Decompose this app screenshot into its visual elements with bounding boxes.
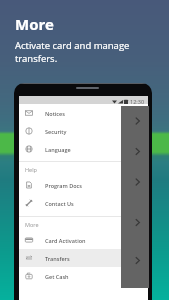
staticText: Contact Us xyxy=(45,200,74,207)
button[interactable]: Contact Us xyxy=(19,194,148,212)
staticText: Help xyxy=(25,166,37,173)
staticText: Card Activation xyxy=(45,237,86,244)
staticText: Notices xyxy=(45,110,65,117)
staticText: Security xyxy=(45,128,67,135)
button[interactable]: Security xyxy=(19,122,148,140)
button[interactable]: Transfers xyxy=(19,249,148,267)
button[interactable]: Program Docs xyxy=(19,176,148,194)
staticText: Language xyxy=(45,146,71,153)
button[interactable]: Get Cash xyxy=(19,267,148,285)
staticText: More xyxy=(15,14,54,34)
staticText: More xyxy=(25,221,39,228)
staticText: Transfers xyxy=(45,255,70,262)
button[interactable]: Card Activation xyxy=(19,231,148,249)
staticText: Activate card and manage transfers. xyxy=(15,39,137,65)
button[interactable]: Language xyxy=(19,140,148,158)
staticText: Get Cash xyxy=(45,273,69,280)
staticText: 12:30 xyxy=(130,98,145,105)
button[interactable]: Notices xyxy=(19,104,148,122)
staticText: Program Docs xyxy=(45,182,82,189)
